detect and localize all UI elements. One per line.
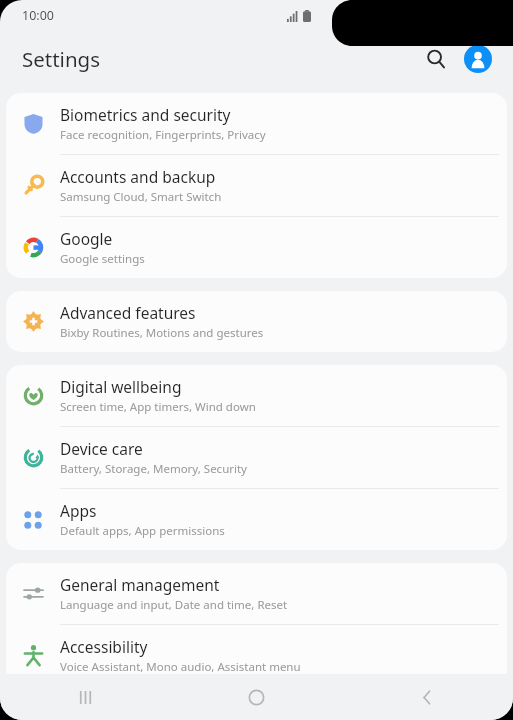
staticText: Accounts and backup xyxy=(60,166,216,187)
button[interactable]: Account xyxy=(458,39,498,79)
button[interactable]: Accessibility xyxy=(6,625,507,686)
staticText: Google xyxy=(60,228,113,249)
staticText: Battery, Storage, Memory, Security xyxy=(60,461,247,477)
staticText: Apps xyxy=(60,500,97,521)
staticText: Biometrics and security xyxy=(60,104,231,125)
button[interactable]: Home xyxy=(171,674,342,720)
button[interactable]: Device care xyxy=(6,427,507,488)
staticText: Voice Assistant, Mono audio, Assistant m… xyxy=(60,659,301,675)
button[interactable]: Google xyxy=(6,217,507,278)
staticText: General management xyxy=(60,574,220,595)
button[interactable]: Apps xyxy=(6,489,507,550)
button[interactable]: Search xyxy=(416,39,456,79)
staticText: 10:00 xyxy=(22,7,54,24)
staticText: Face recognition, Fingerprints, Privacy xyxy=(60,127,266,143)
staticText: Bixby Routines, Motions and gestures xyxy=(60,325,264,341)
staticText: Advanced features xyxy=(60,302,196,323)
staticText: Settings xyxy=(22,45,101,73)
staticText: Language and input, Date and time, Reset xyxy=(60,597,288,613)
button[interactable]: General management xyxy=(6,563,507,624)
button[interactable]: Biometrics and security xyxy=(6,93,507,154)
button[interactable]: Recents xyxy=(0,674,171,720)
staticText: Digital wellbeing xyxy=(60,376,182,397)
staticText: Samsung Cloud, Smart Switch xyxy=(60,189,222,205)
button[interactable]: Back xyxy=(342,674,513,720)
button[interactable]: Accounts and backup xyxy=(6,155,507,216)
staticText: Device care xyxy=(60,438,143,459)
staticText: Default apps, App permissions xyxy=(60,523,225,539)
staticText: Google settings xyxy=(60,251,145,267)
button[interactable]: Advanced features xyxy=(6,291,507,352)
button[interactable]: Digital wellbeing xyxy=(6,365,507,426)
staticText: Accessibility xyxy=(60,636,148,657)
staticText: Screen time, App timers, Wind down xyxy=(60,399,256,415)
